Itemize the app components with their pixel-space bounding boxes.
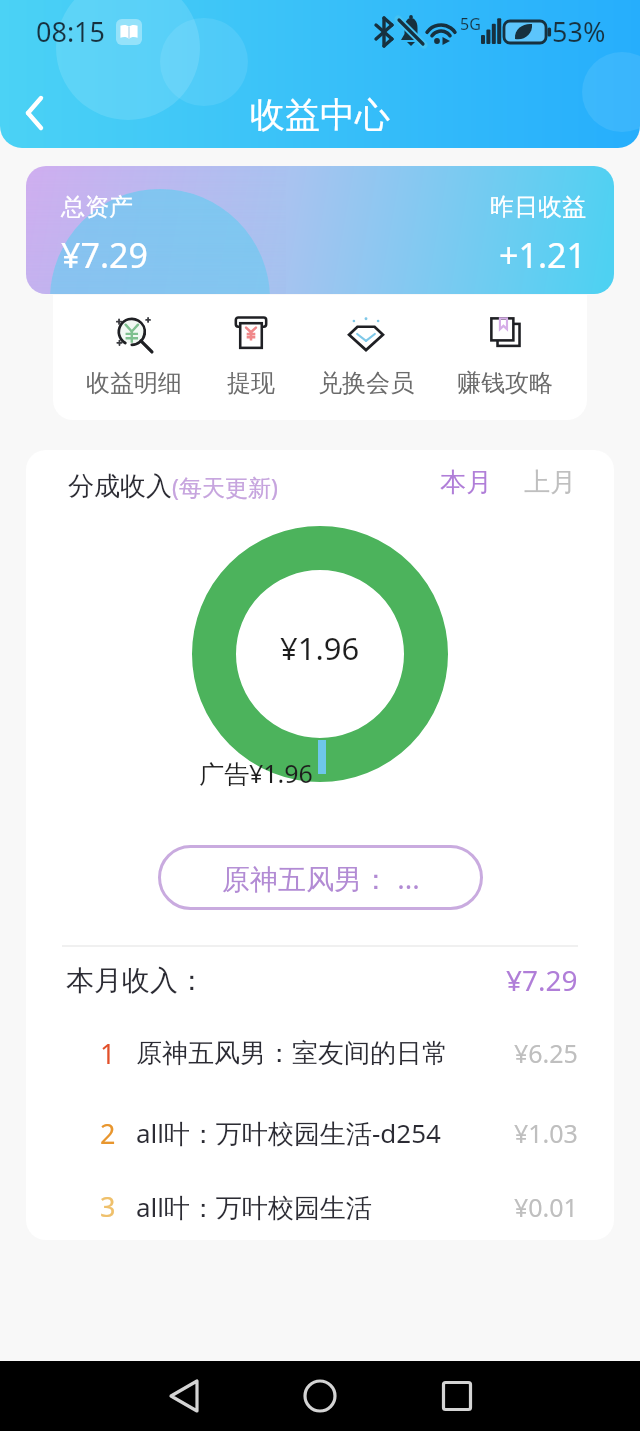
staticText: 上月	[524, 466, 576, 499]
button[interactable]: Recents	[427, 1366, 487, 1426]
staticText: 收益明细	[86, 368, 182, 398]
button[interactable]: 上月	[516, 462, 584, 503]
staticText: 广告¥1.96	[199, 756, 313, 790]
button[interactable]: 赚钱攻略	[452, 312, 558, 398]
staticText: ¥7.29	[506, 961, 578, 999]
button[interactable]: 总资产	[26, 166, 614, 294]
staticText: 1	[100, 1035, 116, 1072]
staticText: (每天更新)	[172, 471, 278, 502]
staticText: 提现	[227, 368, 275, 398]
button[interactable]: 原神五风男： ...	[158, 845, 483, 910]
staticText: ¥1.96	[280, 627, 360, 669]
staticText: ¥7.29	[61, 232, 148, 278]
staticText: 08:15	[36, 13, 106, 50]
button[interactable]: 2	[26, 1093, 614, 1173]
staticText: 3	[100, 1188, 116, 1225]
staticText: 53%	[552, 13, 606, 50]
staticText: 收益中心	[250, 93, 390, 137]
staticText: 兑换会员	[318, 368, 414, 398]
staticText: 2	[100, 1115, 116, 1152]
staticText: ¥6.25	[514, 1036, 578, 1070]
staticText: all叶：万叶校园生活-d254	[136, 1115, 441, 1151]
button[interactable]: 3	[26, 1173, 614, 1240]
staticText: +1.21	[499, 232, 586, 278]
button[interactable]: Home	[290, 1366, 350, 1426]
button[interactable]: 提现	[198, 312, 304, 398]
staticText: 分成收入	[68, 470, 172, 503]
staticText: 本月收入：	[66, 963, 206, 998]
staticText: 5G	[460, 13, 481, 35]
staticText: ¥1.03	[514, 1116, 578, 1150]
button[interactable]: 1	[26, 1013, 614, 1093]
staticText: ¥0.01	[514, 1190, 578, 1224]
button[interactable]: 收益明细	[81, 312, 187, 398]
staticText: 原神五风男： ...	[222, 859, 420, 897]
button[interactable]: Back	[157, 1366, 217, 1426]
staticText: 原神五风男：室友间的日常	[136, 1037, 448, 1070]
button[interactable]: 兑换会员	[313, 312, 419, 398]
button[interactable]: Back	[7, 85, 63, 141]
staticText: 总资产	[61, 192, 133, 222]
staticText: 本月	[440, 466, 492, 499]
staticText: 昨日收益	[490, 192, 586, 222]
staticText: 赚钱攻略	[457, 368, 553, 398]
button[interactable]: 本月	[432, 462, 500, 503]
staticText: all叶：万叶校园生活	[136, 1189, 373, 1225]
